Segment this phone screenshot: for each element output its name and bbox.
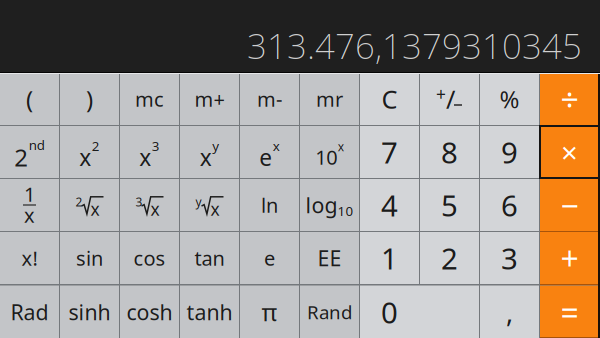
button[interactable]: ( bbox=[0, 73, 59, 125]
button[interactable]: 1 bbox=[0, 179, 59, 231]
staticText: π bbox=[261, 296, 277, 328]
button[interactable]: 4 bbox=[360, 179, 419, 231]
staticText: 2 bbox=[441, 238, 458, 277]
button[interactable]: sinh bbox=[60, 285, 119, 338]
staticText: x bbox=[139, 142, 151, 172]
button[interactable]: x bbox=[180, 126, 239, 178]
button[interactable]: x bbox=[120, 126, 179, 178]
button[interactable]: y bbox=[180, 179, 239, 231]
staticText: 10 bbox=[337, 202, 353, 220]
button[interactable]: 0 bbox=[360, 285, 479, 338]
staticText: , bbox=[506, 294, 513, 330]
staticText: 0 bbox=[381, 292, 398, 331]
staticText: 1 bbox=[24, 181, 35, 207]
staticText: 10 bbox=[315, 144, 337, 170]
button[interactable]: 7 bbox=[360, 126, 419, 178]
button[interactable]: x! bbox=[0, 232, 59, 284]
staticText: sinh bbox=[68, 298, 110, 326]
button[interactable]: e bbox=[240, 126, 299, 178]
staticText: mc bbox=[135, 86, 164, 112]
staticText: e bbox=[259, 142, 272, 172]
button[interactable]: x bbox=[60, 126, 119, 178]
staticText: m- bbox=[257, 86, 282, 112]
button[interactable]: m+ bbox=[180, 73, 239, 125]
button[interactable]: 5 bbox=[420, 179, 479, 231]
button[interactable]: ln bbox=[240, 179, 299, 231]
staticText: + bbox=[436, 82, 446, 105]
staticText: 3 bbox=[501, 238, 518, 277]
button[interactable]: + bbox=[540, 232, 599, 284]
button[interactable]: 3 bbox=[480, 232, 539, 284]
staticText: tanh bbox=[186, 298, 232, 326]
button[interactable]: mc bbox=[120, 73, 179, 125]
staticText: 2 bbox=[75, 194, 82, 210]
staticText: cosh bbox=[126, 298, 172, 326]
staticText: EE bbox=[317, 244, 341, 272]
button[interactable]: + bbox=[420, 73, 479, 125]
button[interactable]: 10 bbox=[300, 126, 359, 178]
staticText: sin bbox=[76, 245, 103, 271]
staticText: Rad bbox=[10, 298, 48, 326]
button[interactable]: − bbox=[540, 179, 599, 231]
staticText: 3 bbox=[152, 137, 160, 155]
staticText: x bbox=[210, 197, 219, 220]
button[interactable]: C bbox=[360, 73, 419, 125]
button[interactable]: tan bbox=[180, 232, 239, 284]
staticText: log bbox=[305, 191, 337, 219]
staticText: x bbox=[200, 142, 212, 172]
button[interactable]: 9 bbox=[480, 126, 539, 178]
button[interactable]: 8 bbox=[420, 126, 479, 178]
button[interactable]: tanh bbox=[180, 285, 239, 338]
staticText: ÷ bbox=[560, 78, 578, 120]
staticText: 2 bbox=[92, 137, 100, 155]
staticText: x bbox=[338, 139, 344, 155]
staticText: 9 bbox=[501, 132, 518, 171]
staticText: 1 bbox=[381, 238, 398, 277]
staticText: x bbox=[24, 202, 35, 228]
button[interactable]: ÷ bbox=[540, 73, 599, 125]
staticText: 2 bbox=[14, 141, 28, 173]
button[interactable]: 2 bbox=[420, 232, 479, 284]
staticText: C bbox=[381, 82, 397, 116]
staticText: ( bbox=[26, 83, 33, 115]
button[interactable]: EE bbox=[300, 232, 359, 284]
staticText: 5 bbox=[441, 185, 458, 224]
staticText: + bbox=[560, 237, 578, 279]
staticText: mr bbox=[316, 86, 343, 112]
staticText: x bbox=[79, 142, 91, 172]
button[interactable]: Rand bbox=[300, 285, 359, 338]
staticText: cos bbox=[133, 245, 165, 271]
button[interactable]: mr bbox=[300, 73, 359, 125]
button[interactable]: 1 bbox=[360, 232, 419, 284]
staticText: ln bbox=[261, 192, 278, 218]
staticText: 6 bbox=[501, 185, 518, 224]
button[interactable]: % bbox=[480, 73, 539, 125]
button[interactable]: cos bbox=[120, 232, 179, 284]
button[interactable]: m- bbox=[240, 73, 299, 125]
staticText: × bbox=[561, 132, 578, 171]
staticText: x bbox=[150, 197, 159, 220]
staticText: 313.476,1379310345 bbox=[247, 22, 582, 68]
button[interactable]: log bbox=[300, 179, 359, 231]
button[interactable]: 3 bbox=[120, 179, 179, 231]
staticText: y bbox=[195, 194, 201, 210]
button[interactable]: e bbox=[240, 232, 299, 284]
button[interactable]: sin bbox=[60, 232, 119, 284]
staticText: e bbox=[264, 245, 275, 271]
button[interactable]: ) bbox=[60, 73, 119, 125]
button[interactable]: = bbox=[540, 285, 599, 338]
button[interactable]: Rad bbox=[0, 285, 59, 338]
button[interactable]: π bbox=[240, 285, 299, 338]
staticText: tan bbox=[194, 245, 224, 271]
staticText: % bbox=[499, 83, 519, 115]
button[interactable]: 2 bbox=[0, 126, 59, 178]
button[interactable]: , bbox=[480, 285, 539, 338]
button[interactable]: cosh bbox=[120, 285, 179, 338]
staticText: m+ bbox=[194, 86, 224, 112]
staticText: x bbox=[273, 137, 280, 155]
button[interactable]: × bbox=[540, 126, 599, 178]
button[interactable]: 6 bbox=[480, 179, 539, 231]
staticText: − bbox=[560, 184, 578, 226]
button[interactable]: 2 bbox=[60, 179, 119, 231]
staticText: x! bbox=[21, 245, 37, 271]
